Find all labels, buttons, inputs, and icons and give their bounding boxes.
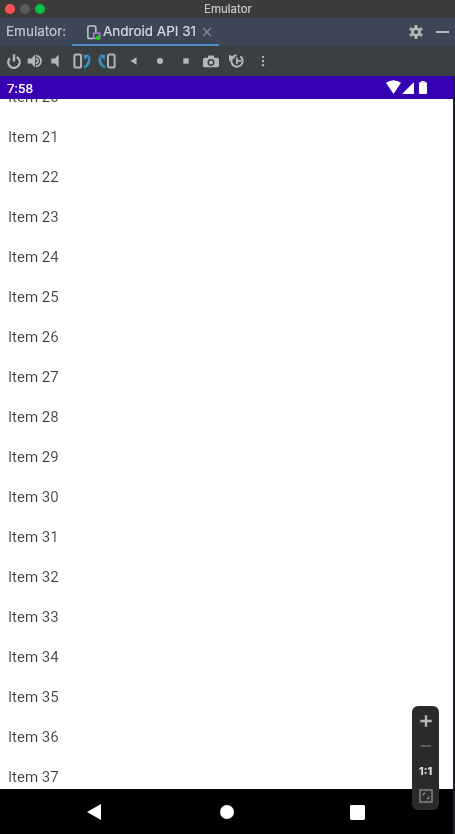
button[interactable]: Item 37	[0, 757, 455, 797]
button[interactable]: Home	[148, 46, 171, 76]
button[interactable]: Item 22	[0, 157, 455, 197]
staticText: Item 36	[8, 728, 59, 746]
button[interactable]: History	[225, 46, 248, 76]
button[interactable]: Item 28	[0, 397, 455, 437]
button[interactable]: Item 35	[0, 677, 455, 717]
staticText: Item 26	[8, 328, 59, 346]
button[interactable]: Item 24	[0, 237, 455, 277]
button[interactable]: Rotate left	[70, 46, 93, 76]
staticText: Item 37	[8, 768, 59, 786]
button[interactable]: Item 21	[0, 117, 455, 157]
staticText: 7:58	[7, 80, 34, 96]
staticText: Item 27	[8, 368, 59, 386]
button[interactable]: Item 33	[0, 597, 455, 637]
button[interactable]: Item 25	[0, 277, 455, 317]
button[interactable]: Item 23	[0, 197, 455, 237]
button[interactable]: Power	[2, 46, 25, 76]
button[interactable]: Item 27	[0, 357, 455, 397]
button[interactable]: Volume up	[24, 46, 47, 76]
button[interactable]: Minimize panel	[431, 21, 453, 43]
button[interactable]: Settings	[405, 21, 427, 43]
staticText: Item 23	[8, 208, 59, 226]
button[interactable]: Item 31	[0, 517, 455, 557]
staticText: Android API 31	[103, 23, 197, 39]
staticText: Emulator:	[6, 23, 67, 39]
button[interactable]: Volume down	[46, 46, 69, 76]
staticText: Item 28	[8, 408, 59, 426]
staticText: Item 35	[8, 688, 59, 706]
button[interactable]: Item 36	[0, 717, 455, 757]
staticText: Item 29	[8, 448, 59, 466]
staticText: Item 32	[8, 568, 59, 586]
staticText: Item 33	[8, 608, 59, 626]
button[interactable]: Maximize	[35, 4, 45, 14]
button[interactable]: Item 29	[0, 437, 455, 477]
button[interactable]: Item 34	[0, 637, 455, 677]
button[interactable]: Item 38	[0, 797, 455, 834]
button[interactable]: Back	[74, 792, 114, 832]
staticText: Item 25	[8, 288, 59, 306]
button[interactable]: Close tab	[201, 26, 212, 37]
button[interactable]: Close	[5, 4, 15, 14]
staticText: Item 20	[8, 88, 59, 106]
button[interactable]: Home	[207, 792, 247, 832]
button[interactable]: Back	[122, 46, 145, 76]
button[interactable]: Fit to screen	[412, 787, 439, 805]
button[interactable]: Minimize	[20, 4, 30, 14]
button[interactable]: Screenshot	[199, 46, 222, 76]
button[interactable]: Overview	[174, 46, 197, 76]
button[interactable]: Item 32	[0, 557, 455, 597]
staticText: Item 30	[8, 488, 59, 506]
button[interactable]: Zoom out	[412, 737, 439, 755]
button[interactable]: Item 30	[0, 477, 455, 517]
button[interactable]: More options	[251, 46, 274, 76]
staticText: Item 21	[8, 128, 59, 146]
button[interactable]: Item 26	[0, 317, 455, 357]
staticText: Item 31	[8, 528, 59, 546]
button[interactable]: Recent apps	[337, 792, 377, 832]
staticText: Item 24	[8, 248, 59, 266]
staticText: Emulator	[204, 2, 252, 16]
staticText: Item 22	[8, 168, 59, 186]
button[interactable]: Item 20	[0, 77, 455, 117]
button[interactable]: Rotate right	[95, 46, 118, 76]
button[interactable]: Zoom in	[412, 712, 439, 730]
staticText: 1:1	[419, 764, 433, 777]
button[interactable]: 1:1	[412, 762, 439, 778]
staticText: Item 34	[8, 648, 59, 666]
